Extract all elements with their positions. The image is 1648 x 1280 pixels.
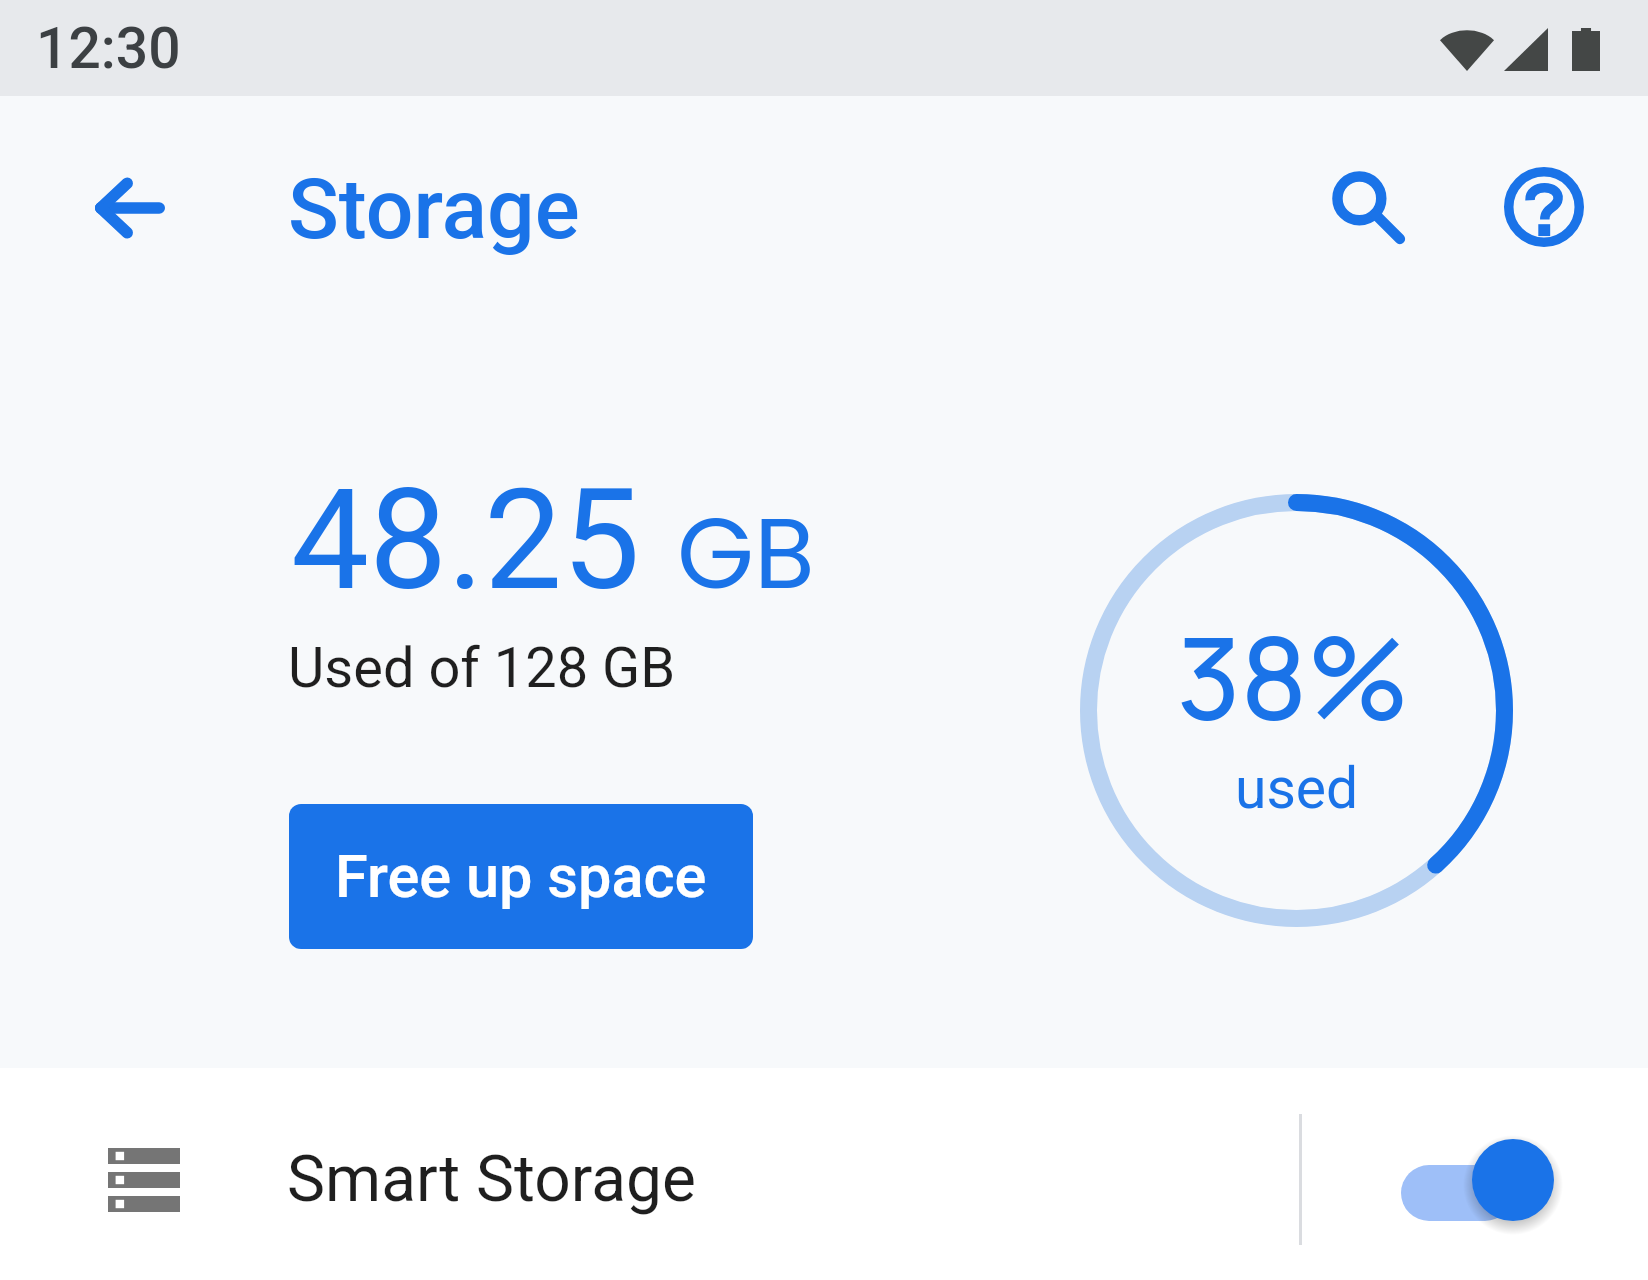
button[interactable]: Free up space (289, 804, 753, 949)
staticText: GB (677, 484, 815, 623)
button[interactable]: Back (72, 150, 188, 266)
staticText: 38% (1177, 599, 1410, 753)
button[interactable]: Smart Storage (0, 1068, 1648, 1280)
staticText: Smart Storage (287, 1142, 696, 1217)
button[interactable]: Help (1486, 149, 1602, 265)
staticText: Free up space (335, 842, 707, 912)
staticText: Used of 128 GB (288, 635, 676, 701)
staticText: used (1235, 755, 1359, 822)
staticText: 48.25 (291, 459, 641, 622)
staticText: Storage (288, 160, 580, 258)
button[interactable]: Smart Storage toggle, on (1401, 1139, 1555, 1221)
staticText: 12:30 (36, 15, 181, 82)
button[interactable]: Search (1310, 149, 1426, 265)
